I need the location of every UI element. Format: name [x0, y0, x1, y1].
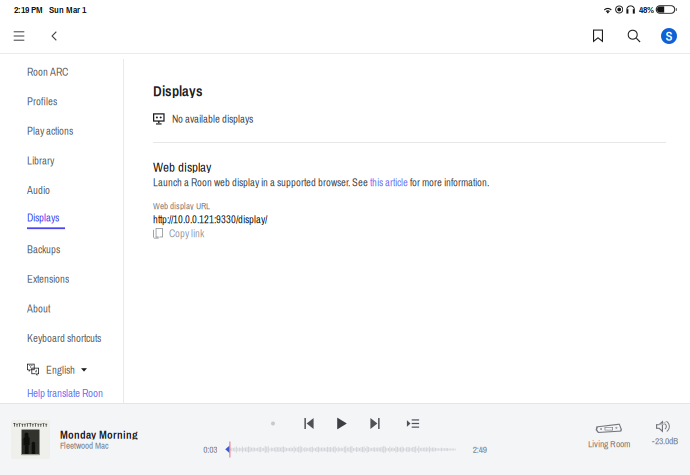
staticText: Extensions [27, 272, 69, 286]
button[interactable]: Audio [27, 175, 123, 205]
button[interactable]: Roon ARC [27, 57, 123, 87]
button[interactable]: Backups [27, 235, 123, 264]
button[interactable]: About [27, 294, 123, 323]
button[interactable]: English [27, 361, 87, 379]
staticText: Copy link [169, 226, 204, 241]
staticText: -23.0dB [652, 435, 678, 447]
button[interactable]: Play [331, 415, 353, 431]
button[interactable]: Help translate Roon [27, 387, 103, 399]
button[interactable]: Displays [27, 205, 123, 235]
staticText: No available displays [172, 112, 253, 126]
staticText: http://10.0.0.121:9330/display/ [153, 212, 267, 227]
staticText: About [27, 301, 50, 316]
staticText: Fleetwood Mac [60, 440, 109, 451]
button[interactable]: Monday Morning [0, 420, 196, 459]
button[interactable]: Back [44, 21, 64, 51]
staticText: Library [27, 153, 54, 168]
button[interactable]: this article [370, 175, 408, 190]
staticText: Backups [27, 242, 60, 257]
button[interactable]: Bookmarks [583, 21, 613, 51]
staticText: S [665, 27, 672, 45]
staticText: 2:49 [473, 443, 487, 456]
button[interactable]: Next track [364, 415, 386, 431]
staticText: Displays [153, 81, 203, 101]
button[interactable]: Extensions [27, 264, 123, 294]
button[interactable]: Living Room [586, 404, 632, 475]
button[interactable]: Queue [402, 415, 424, 431]
staticText: 0:03 [203, 443, 217, 456]
staticText: Keyboard shortcuts [27, 331, 101, 345]
staticText: 2:19 PM [14, 3, 43, 16]
staticText: Help translate Roon [27, 386, 103, 400]
button[interactable]: Copy link [153, 228, 204, 239]
button[interactable]: Search [619, 21, 649, 51]
staticText: Living Room [588, 438, 630, 450]
staticText: Sun Mar 1 [49, 3, 86, 16]
staticText: Audio [27, 183, 50, 197]
staticText: Web display [153, 158, 211, 176]
staticText: for more information. [408, 175, 489, 190]
button[interactable]: Library [27, 146, 123, 175]
button[interactable]: Account [656, 21, 682, 51]
button[interactable]: Previous track [298, 415, 320, 431]
staticText: this article [370, 175, 408, 190]
staticText: Launch a Roon web display in a supported… [153, 175, 370, 190]
staticText: Play actions [27, 124, 73, 138]
staticText: Roon ARC [27, 65, 68, 79]
button[interactable]: Profiles [27, 87, 123, 116]
staticText: Displays [27, 210, 59, 225]
staticText: Web display URL [153, 200, 210, 212]
staticText: 48% [639, 3, 654, 16]
staticText: English [46, 363, 75, 377]
staticText: Monday Morning [60, 427, 138, 442]
button[interactable]: Menu [7, 21, 31, 51]
button[interactable]: -23.0dB [648, 404, 682, 475]
button[interactable]: Shuffle [262, 415, 284, 431]
button[interactable]: Keyboard shortcuts [27, 323, 123, 353]
staticText: Profiles [27, 94, 57, 109]
button[interactable]: Play actions [27, 116, 123, 146]
